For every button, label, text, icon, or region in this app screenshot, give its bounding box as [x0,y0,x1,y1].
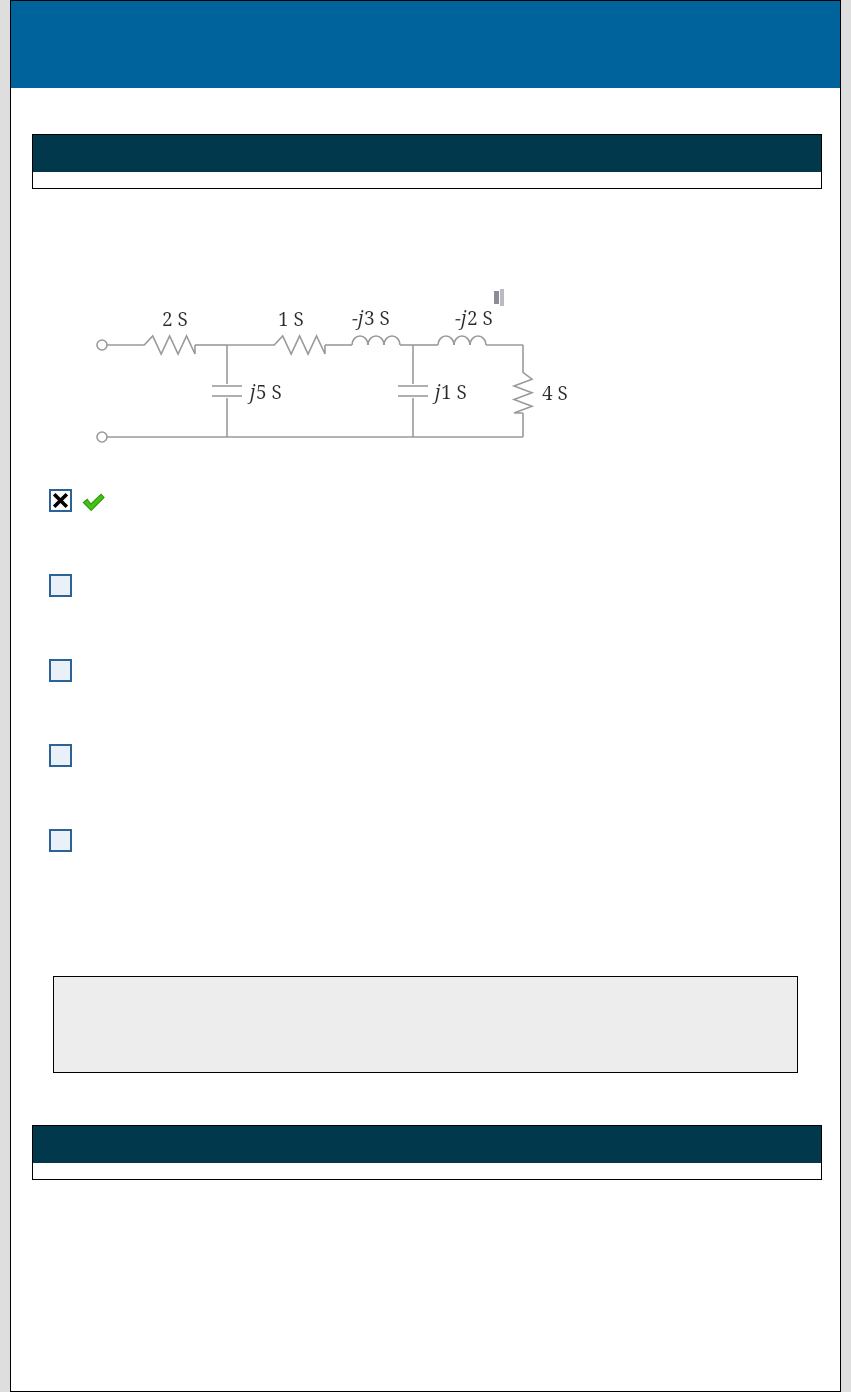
button[interactable]: Answer option [10,744,841,771]
staticText: 4 S [542,380,568,406]
button[interactable] [10,0,841,88]
button[interactable] [32,134,822,189]
button[interactable] [32,1125,822,1180]
staticText: 1 S [278,306,304,332]
staticText: 5 S [256,379,282,405]
staticText: 2 S [467,305,493,331]
staticText: −j [352,305,364,331]
staticText: 3 S [364,305,390,331]
staticText: j [250,379,256,405]
staticText: j [435,379,441,405]
staticText: 2 S [162,306,188,332]
button[interactable]: Answer option [10,574,841,601]
staticText: 1 S [441,379,467,405]
button[interactable]: Answer option [10,829,841,856]
button[interactable] [53,976,798,1073]
button[interactable]: Selected answer [10,489,841,516]
button[interactable]: Answer option [10,659,841,686]
staticText: −j [455,305,467,331]
